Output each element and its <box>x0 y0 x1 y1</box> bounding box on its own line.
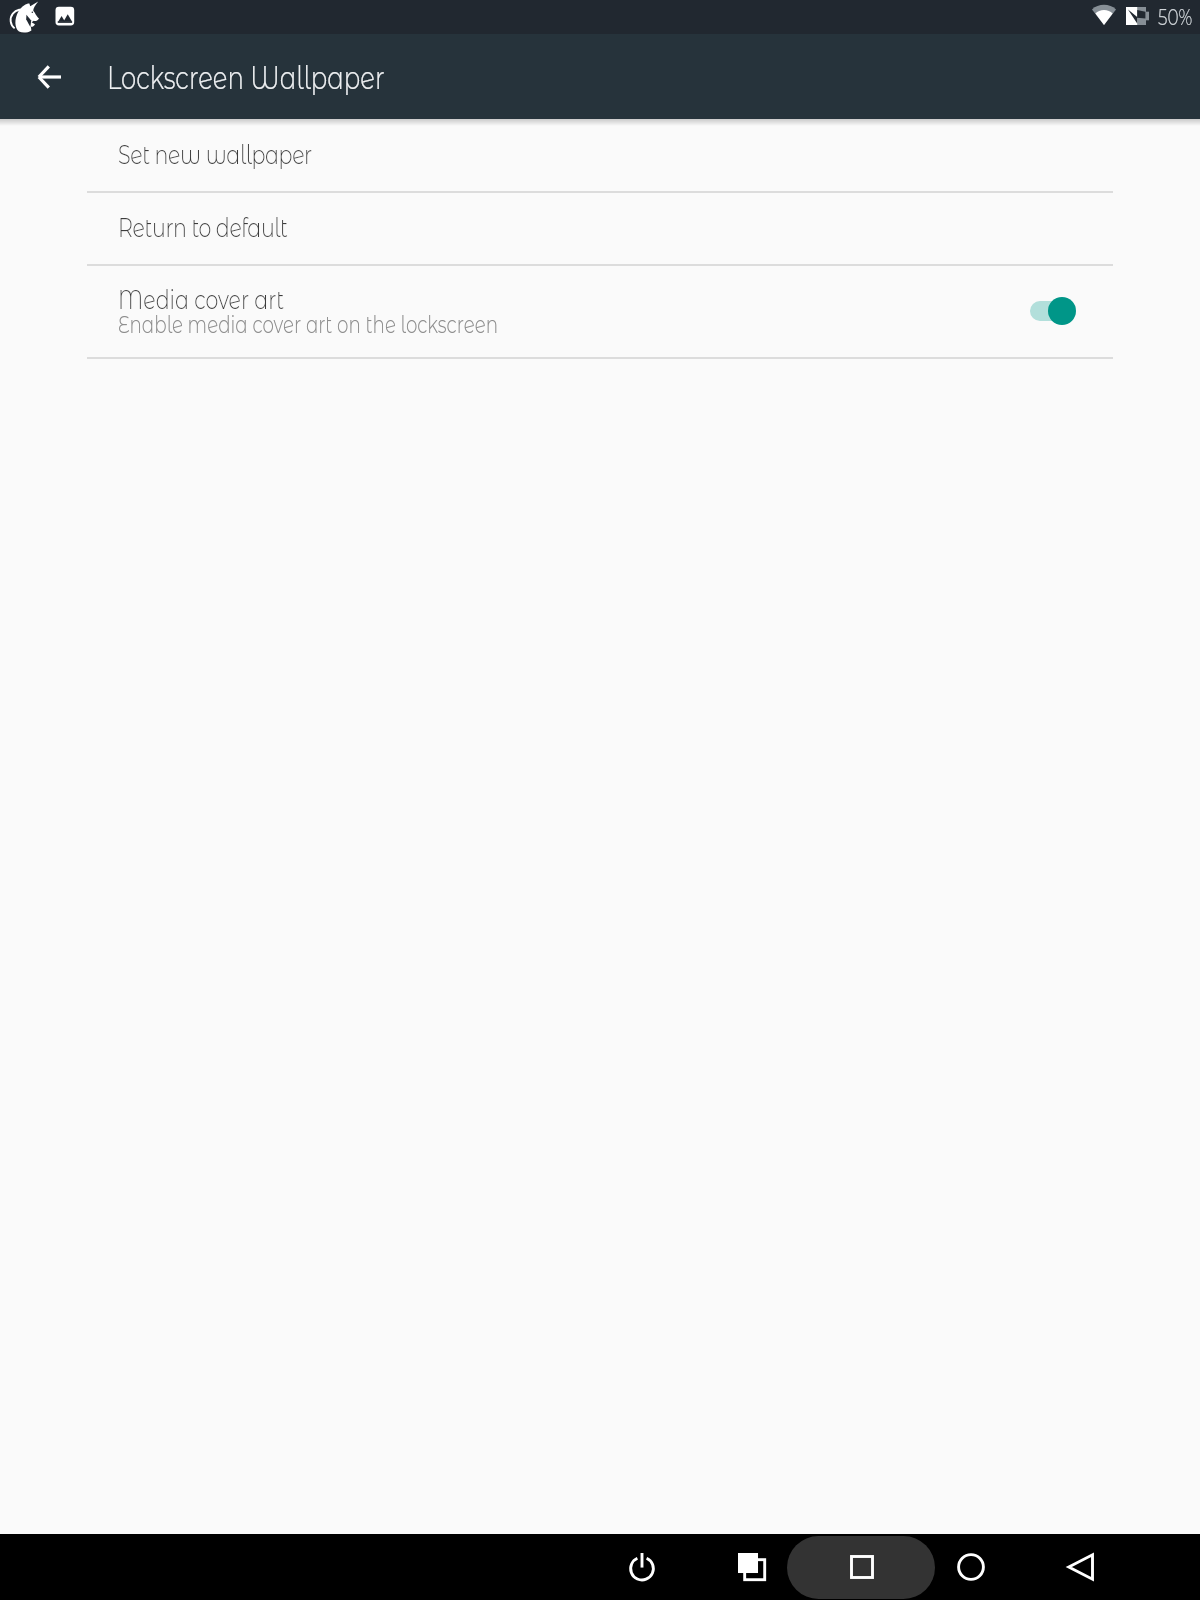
button[interactable]: Power <box>612 1537 672 1597</box>
button[interactable]: Toggle media cover art <box>1028 296 1078 328</box>
button[interactable]: Home <box>941 1537 1001 1597</box>
staticText: Set new wallpaper <box>118 138 312 171</box>
button[interactable]: Split screen <box>722 1537 782 1597</box>
staticText: Media cover art <box>118 283 285 316</box>
button[interactable]: Back <box>24 52 74 102</box>
button[interactable]: Recents <box>832 1537 892 1597</box>
button[interactable]: Media cover art <box>0 266 1200 357</box>
staticText: Enable media cover art on the lockscreen <box>118 310 498 339</box>
staticText: Lockscreen Wallpaper <box>107 58 385 97</box>
button[interactable]: Return to default <box>0 193 1200 264</box>
button[interactable]: Set new wallpaper <box>0 119 1200 191</box>
staticText: Return to default <box>118 211 288 244</box>
button[interactable]: Back <box>1051 1537 1111 1597</box>
staticText: 50% <box>1158 4 1192 31</box>
